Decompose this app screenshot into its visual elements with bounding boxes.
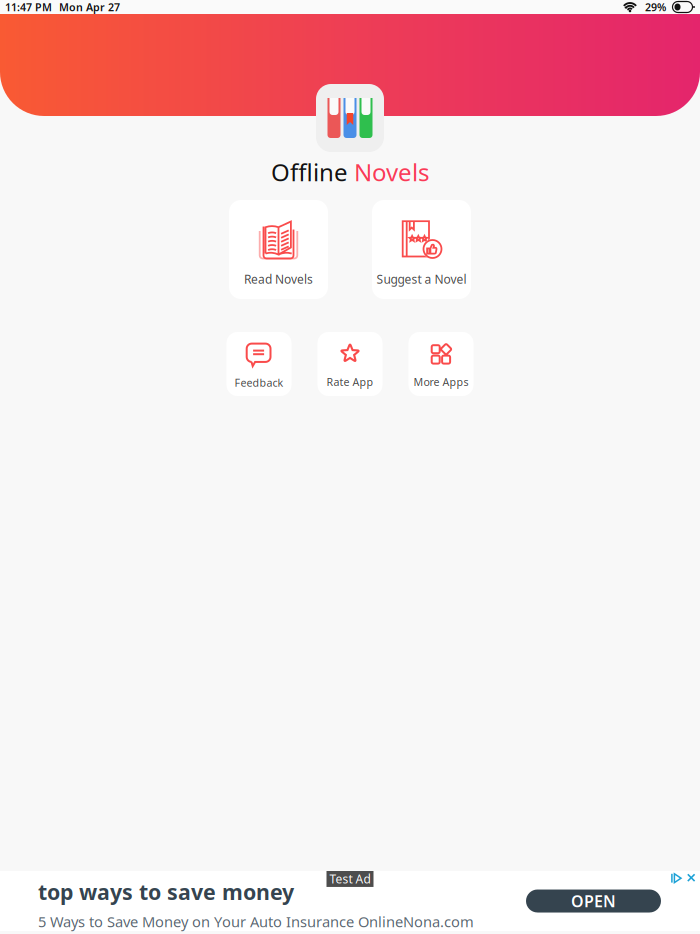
staticText: Suggest a Novel [376, 271, 466, 287]
button[interactable]: Feedback [226, 332, 291, 396]
button[interactable]: More Apps [408, 332, 473, 396]
button[interactable]: Suggest a Novel [372, 200, 471, 299]
staticText: 11:47 PM [5, 0, 52, 14]
staticText: top ways to save money [38, 878, 294, 906]
button[interactable]: Rate App [317, 332, 382, 396]
button[interactable]: Read Novels [229, 200, 328, 299]
staticText: Feedback [234, 375, 283, 390]
staticText: Novels [354, 156, 429, 188]
staticText: More Apps [413, 375, 468, 389]
button[interactable]: OPEN [526, 889, 661, 912]
staticText: Test Ad [329, 871, 370, 887]
staticText: OPEN [571, 890, 616, 912]
staticText: Offline [271, 156, 354, 188]
staticText: Mon Apr 27 [59, 0, 120, 14]
staticText: Read Novels [244, 271, 313, 287]
staticText: Rate App [326, 375, 373, 389]
staticText: 5 Ways to Save Money on Your Auto Insura… [38, 912, 474, 931]
staticText: 29% [645, 0, 666, 14]
